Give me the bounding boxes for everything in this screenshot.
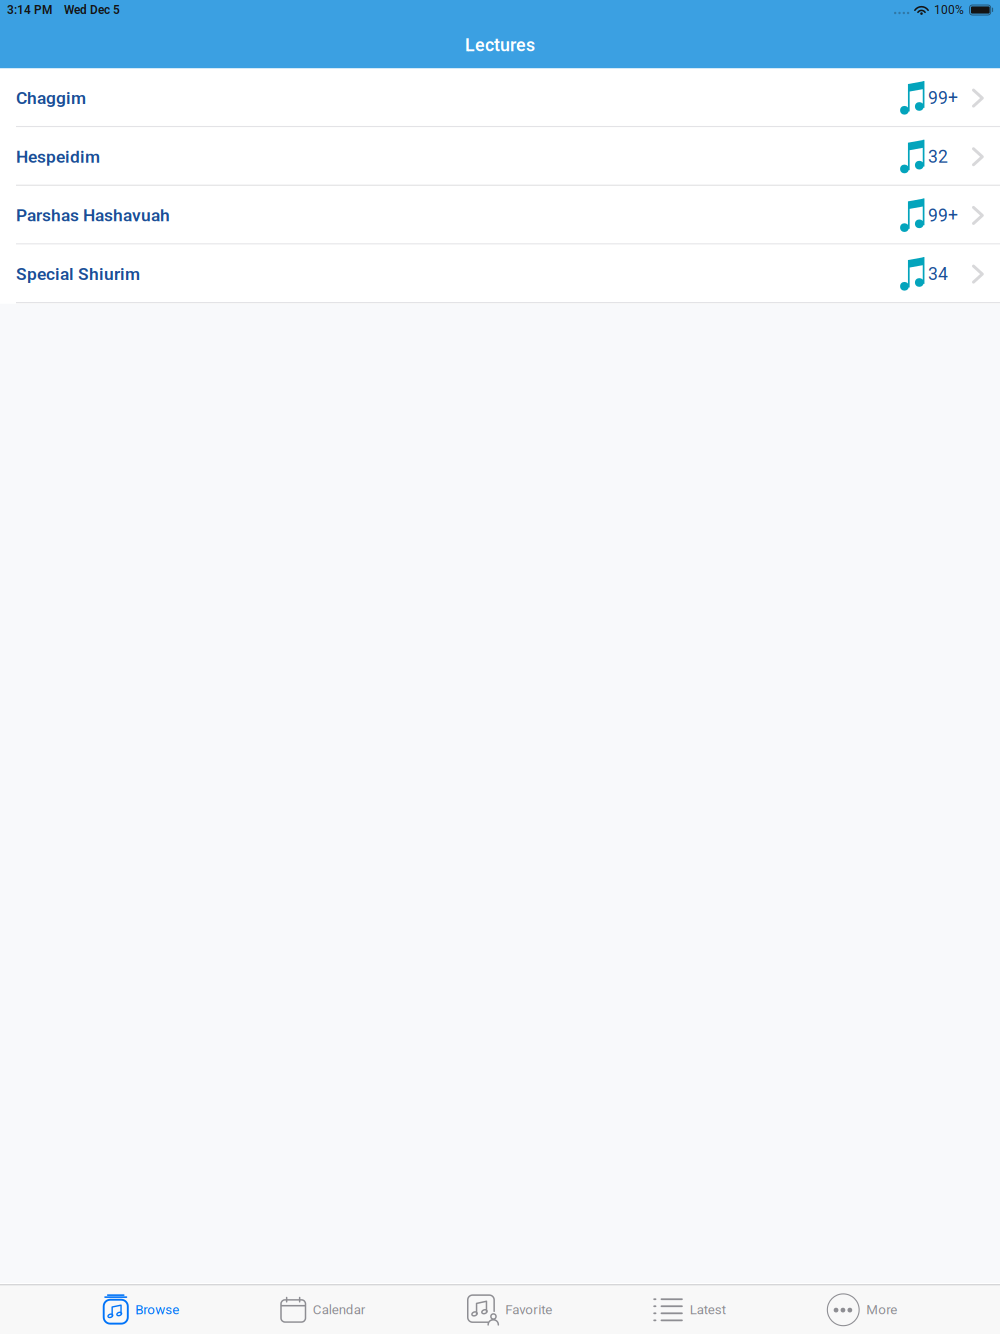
staticText: More — [866, 1302, 897, 1318]
staticText: Wed Dec 5 — [64, 3, 120, 17]
staticText: Latest — [690, 1302, 726, 1318]
button[interactable]: Chaggim — [0, 69, 1000, 127]
staticText: Browse — [135, 1302, 179, 1318]
button[interactable]: Hespeidim — [0, 127, 1000, 186]
button[interactable]: Special Shiurim — [0, 245, 1000, 303]
button[interactable]: Calendar — [230, 1286, 416, 1334]
staticText: Calendar — [313, 1302, 366, 1318]
staticText: Favorite — [505, 1302, 552, 1318]
staticText: Hespeidim — [16, 147, 100, 167]
button[interactable]: Parshas Hashavuah — [0, 186, 1000, 245]
button[interactable]: Latest — [603, 1286, 776, 1334]
staticText: 99+ — [928, 88, 958, 108]
staticText: 32 — [928, 146, 948, 167]
staticText: Lectures — [465, 35, 535, 56]
staticText: 34 — [928, 264, 948, 284]
staticText: 3:14 PM — [7, 3, 52, 17]
button[interactable]: Browse — [53, 1286, 229, 1334]
staticText: Chaggim — [16, 88, 86, 108]
staticText: 99+ — [928, 205, 958, 226]
staticText: Parshas Hashavuah — [16, 205, 170, 226]
staticText: 100% — [934, 3, 964, 17]
staticText: Special Shiurim — [16, 264, 140, 284]
button[interactable]: Favorite — [417, 1286, 602, 1334]
button[interactable]: More — [777, 1286, 947, 1334]
